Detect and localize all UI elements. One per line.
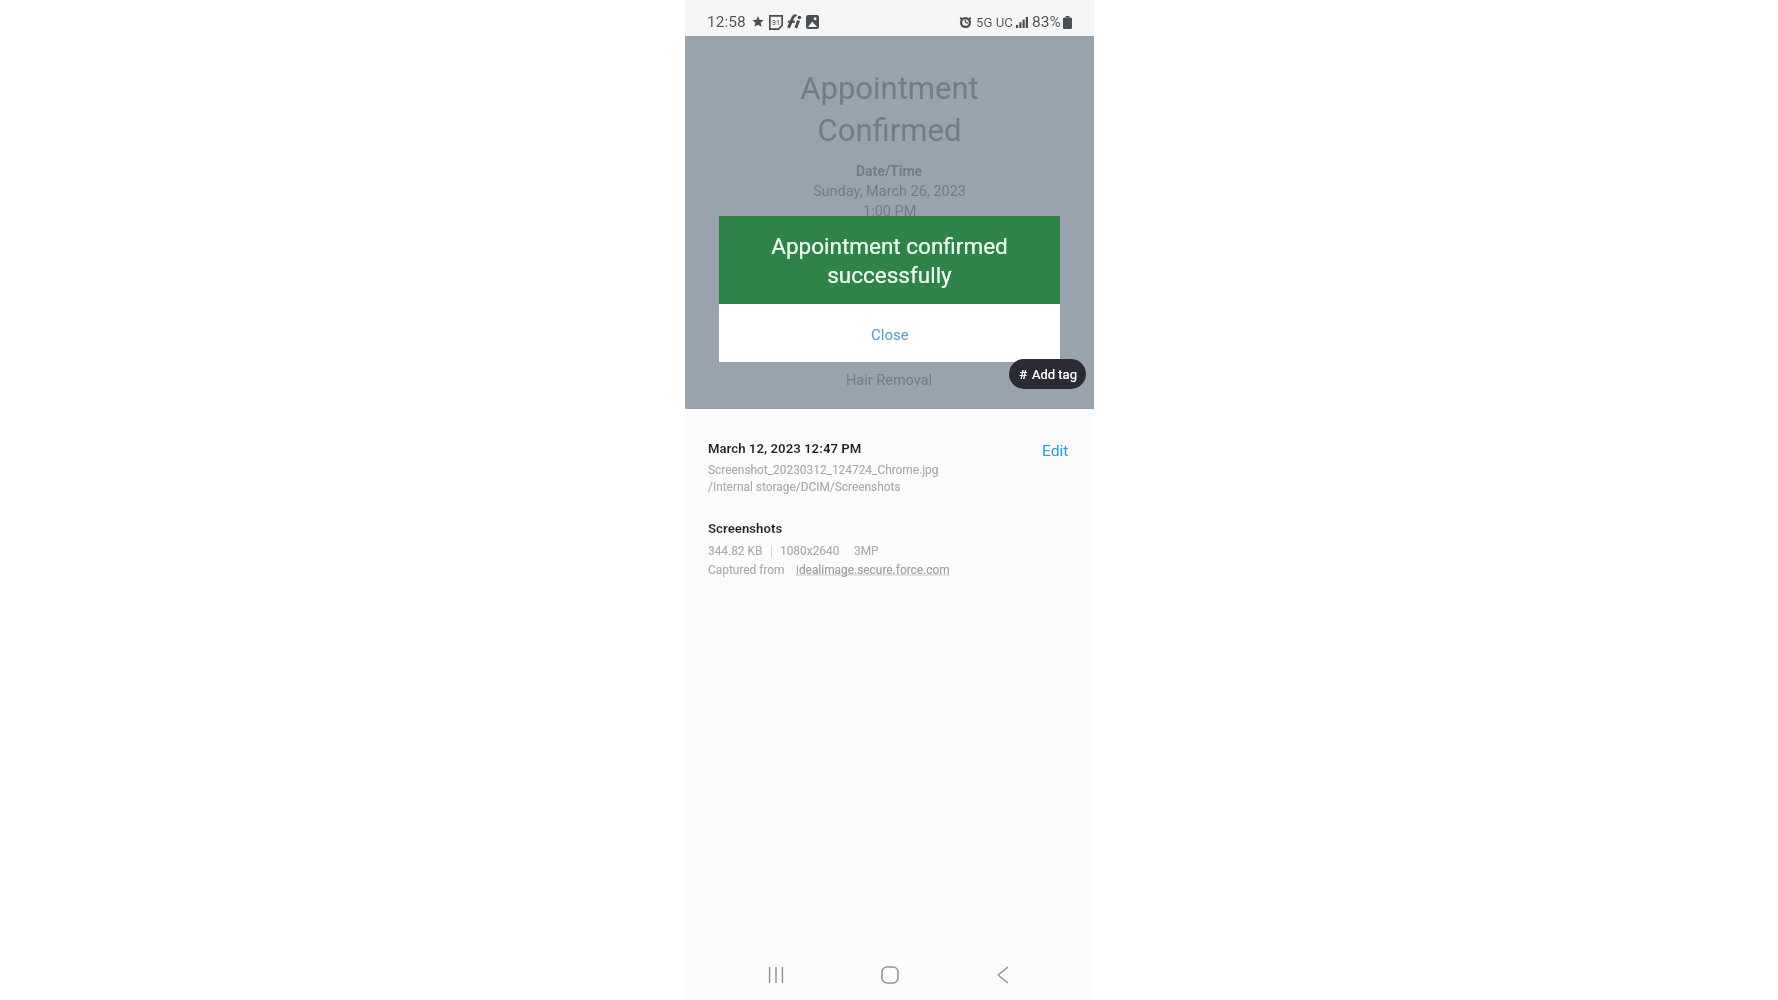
button[interactable]: Recent apps [753,952,799,998]
staticText: 1:00 PM [863,203,917,220]
staticText: Appointment Confirmed [800,70,979,149]
staticText: Edit [1042,442,1069,460]
button[interactable]: # [1009,359,1086,389]
button[interactable]: Back [980,952,1026,998]
staticText: 344.82 KB [708,544,763,558]
staticText: Appointment confirmed successfully [771,233,1008,288]
staticText: 5G UC [976,15,1013,30]
staticText: Close [871,326,909,344]
staticText: Screenshot_20230312_124724_Chrome.jpg [708,463,939,477]
staticText: # [1019,367,1028,382]
staticText: idealimage.secure.force.com [796,563,950,577]
staticText: 1080x2640 [780,544,840,558]
button[interactable]: Home [867,952,913,998]
staticText: Captured from [708,563,785,577]
staticText: 3MP [854,544,879,558]
staticText: 83% [1032,13,1061,31]
staticText: Add tag [1032,367,1077,382]
staticText: March 12, 2023 12:47 PM [708,441,862,456]
staticText: 31 [772,19,780,27]
staticText: Sunday, March 26, 2023 [813,183,966,200]
button[interactable]: idealimage.secure.force.com [796,563,950,577]
staticText: 12:58 [707,13,746,31]
button[interactable]: Edit [1040,441,1071,461]
staticText: Screenshots [708,521,783,536]
button[interactable]: Close [719,304,1060,362]
staticText: Date/Time [856,163,923,179]
staticText: /Internal storage/DCIM/Screenshots [708,480,901,494]
staticText: Hair Removal [846,372,933,389]
